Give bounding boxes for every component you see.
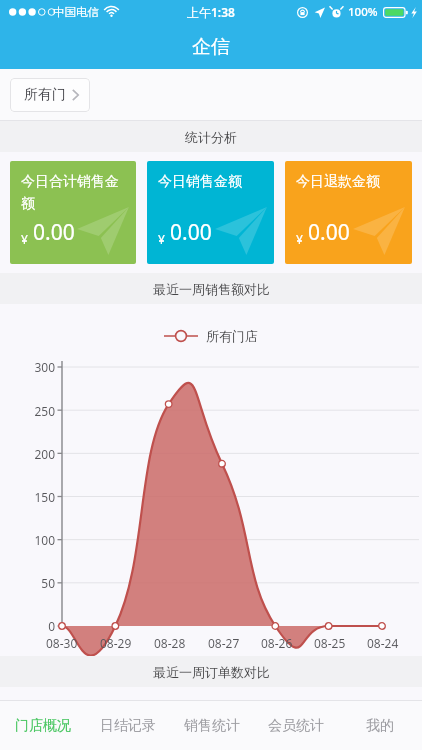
staticText: 08-28 [154,635,186,651]
staticText: 08-24 [367,635,399,651]
staticText: 销售统计 [184,717,240,735]
staticText: 所有门 [24,86,66,104]
staticText: 250 [34,403,55,419]
staticText: ¥ [296,231,303,247]
button[interactable]: 日结记录 [85,701,170,750]
button[interactable]: 销售统计 [170,701,254,750]
staticText: 门店概况 [15,717,71,735]
staticText: 08-27 [208,635,240,651]
staticText: 0.00 [170,218,212,247]
staticText: 最近一周销售额对比 [153,281,270,297]
staticText: 今日销售金额 [158,173,242,191]
staticText: 0 [48,618,55,634]
staticText: 上午1:38 [187,4,235,20]
staticText: 100% [348,4,378,20]
staticText: 50 [41,575,55,591]
staticText: 0.00 [33,218,75,247]
staticText: 今日合计销售金额 [21,173,129,212]
staticText: 100 [34,532,55,548]
staticText: 08-29 [100,635,132,651]
staticText: 08-25 [314,635,346,651]
staticText: 最近一周订单数对比 [153,664,270,680]
staticText: 统计分析 [185,129,237,145]
button[interactable]: 今日销售金额 [147,161,274,264]
staticText: 今日退款金额 [296,173,380,191]
staticText: ¥ [21,231,28,247]
staticText: 08-26 [261,635,293,651]
staticText: 150 [34,489,55,505]
staticText: 会员统计 [268,717,324,735]
button[interactable]: 会员统计 [254,701,338,750]
staticText: 我的 [366,717,394,735]
button[interactable]: 今日退款金额 [285,161,412,264]
staticText: 企信 [192,35,230,59]
button[interactable]: 今日合计销售金额 [10,161,136,264]
staticText: 日结记录 [100,717,156,735]
staticText: 300 [34,359,55,375]
staticText: 08-30 [46,635,78,651]
button[interactable]: 门店概况 [0,701,85,750]
staticText: 0.00 [308,218,350,247]
staticText: 所有门店 [206,328,258,344]
button[interactable]: 我的 [338,701,422,750]
staticText: ¥ [158,231,165,247]
staticText: 200 [34,446,55,462]
staticText: 中国电信 [53,5,99,19]
button[interactable]: 所有门 [10,78,90,112]
